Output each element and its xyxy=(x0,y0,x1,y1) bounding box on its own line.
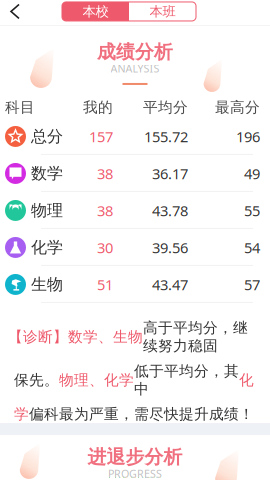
staticText: 高于平均分，继续努力稳固 xyxy=(143,319,248,355)
staticText: 49 xyxy=(244,164,260,183)
button[interactable]: Back xyxy=(0,0,30,26)
staticText: 物理、化学 xyxy=(59,371,134,389)
staticText: 化学 xyxy=(31,238,63,257)
staticText: 155.72 xyxy=(144,127,188,146)
button[interactable]: 数学 xyxy=(0,155,270,192)
staticText: 54 xyxy=(244,238,260,257)
staticText: 学 xyxy=(14,405,29,423)
button[interactable]: 化学 xyxy=(0,229,270,266)
staticText: ANALYSIS xyxy=(110,61,159,76)
staticText: 157 xyxy=(89,127,113,146)
staticText: 科目 xyxy=(5,98,35,116)
staticText: 38 xyxy=(97,164,113,183)
staticText: 总分 xyxy=(31,127,63,146)
staticText: 偏科最为严重，需尽快提升成绩！ xyxy=(29,405,254,423)
staticText: 低于平均分，其中 xyxy=(134,362,239,398)
staticText: 平均分 xyxy=(143,98,188,116)
staticText: 化 xyxy=(239,371,254,389)
staticText: 保先。 xyxy=(14,371,59,389)
staticText: 我的 xyxy=(83,98,113,116)
staticText: 39.56 xyxy=(152,238,188,257)
staticText: 57 xyxy=(244,275,260,294)
staticText: 进退步分析 xyxy=(87,446,182,468)
staticText: 43.47 xyxy=(152,275,188,294)
staticText: 物理 xyxy=(31,201,63,220)
button[interactable]: 本班 xyxy=(129,2,196,21)
staticText: 本校 xyxy=(82,3,108,20)
staticText: 成绩分析 xyxy=(97,40,173,63)
staticText: 最高分 xyxy=(215,98,260,116)
staticText: 55 xyxy=(244,201,260,220)
staticText: 数学 xyxy=(31,164,63,183)
staticText: 生物 xyxy=(31,275,63,294)
staticText: 【诊断】 xyxy=(8,328,68,346)
staticText: 196 xyxy=(236,127,260,146)
staticText: 数学、生物 xyxy=(68,328,143,346)
staticText: 51 xyxy=(97,275,113,294)
button[interactable]: 生物 xyxy=(0,266,270,303)
button[interactable]: 总分 xyxy=(0,118,270,155)
button[interactable]: 本校 xyxy=(62,2,129,21)
staticText: 本班 xyxy=(149,3,175,20)
button[interactable]: 物理 xyxy=(0,192,270,229)
staticText: 43.78 xyxy=(152,201,188,220)
staticText: 30 xyxy=(97,238,113,257)
staticText: 38 xyxy=(97,201,113,220)
staticText: 36.17 xyxy=(152,164,188,183)
staticText: PROGRESS xyxy=(108,466,162,480)
